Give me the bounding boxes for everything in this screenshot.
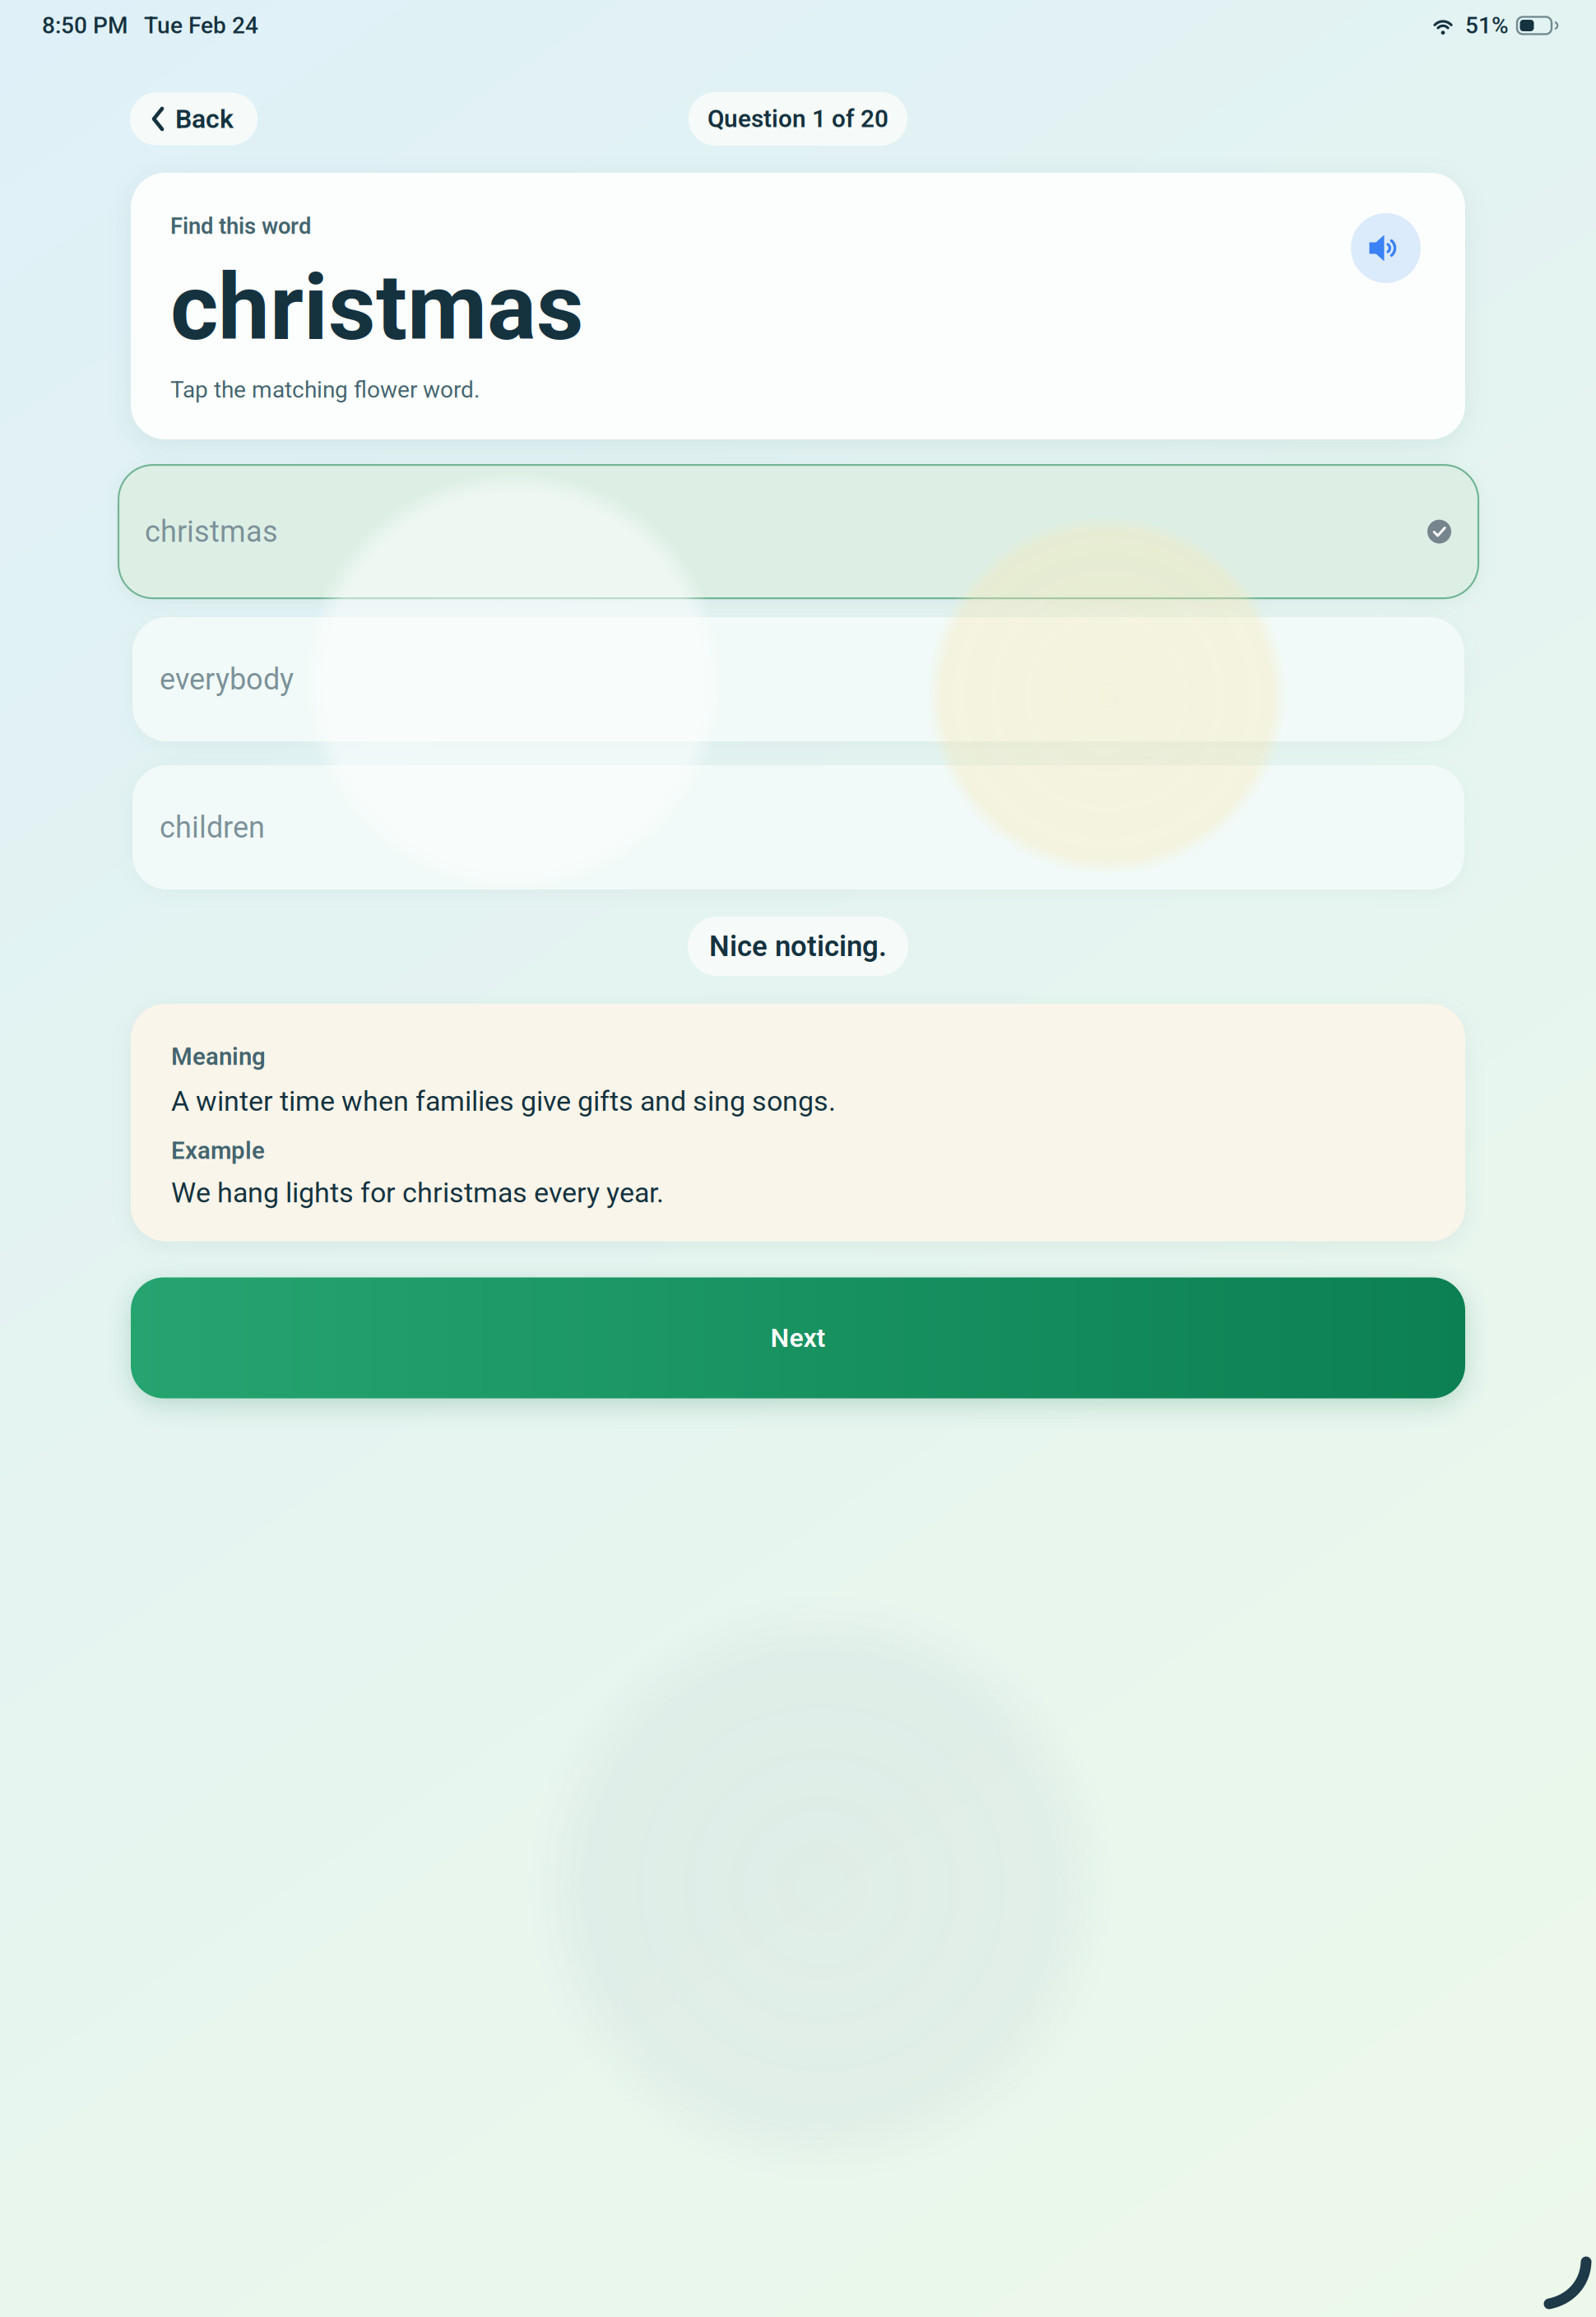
button[interactable]: christmas [118, 465, 1478, 598]
button[interactable]: children [118, 765, 1478, 890]
staticText: Back [175, 104, 234, 134]
staticText: 51% [1465, 12, 1509, 39]
staticText: christmas [170, 253, 584, 361]
staticText: Find this word [170, 213, 311, 239]
button[interactable]: Next [131, 1277, 1465, 1398]
staticText: Tue Feb 24 [128, 12, 258, 39]
staticText: Example [171, 1137, 265, 1165]
staticText: Meaning [171, 1043, 266, 1071]
staticText: Next [770, 1322, 826, 1353]
staticText: Nice noticing. [709, 930, 887, 963]
staticText: A winter time when families give gifts a… [171, 1085, 836, 1118]
staticText: children [160, 810, 265, 845]
staticText: 8:50 [42, 12, 87, 39]
staticText: christmas [145, 514, 278, 549]
button[interactable]: everybody [118, 617, 1478, 741]
button[interactable]: Back [130, 93, 257, 145]
staticText: Question 1 of 20 [708, 105, 888, 133]
staticText: Tap the matching flower word. [170, 376, 480, 403]
staticText: everybody [160, 662, 294, 697]
staticText: PM [87, 12, 128, 39]
button[interactable]: Hear the word [1351, 213, 1421, 283]
staticText: We hang lights for christmas every year. [171, 1176, 664, 1209]
